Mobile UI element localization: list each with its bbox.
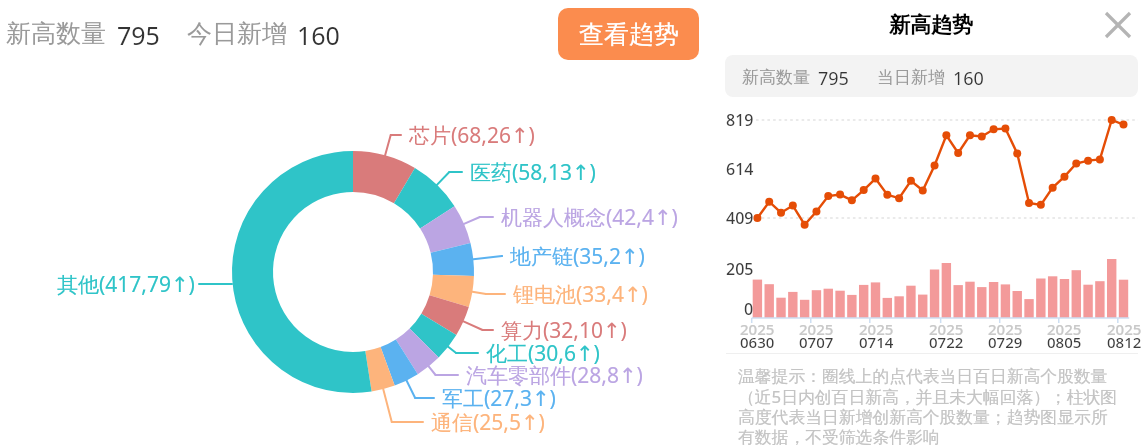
button[interactable]: Close <box>1099 6 1137 44</box>
staticText: 795 <box>117 18 160 52</box>
staticText: 新高数量 <box>742 67 810 88</box>
staticText: 0707 <box>799 332 834 352</box>
button[interactable]: 查看趋势 <box>558 8 699 60</box>
staticText: 2025 <box>859 319 894 339</box>
staticText: 温馨提示：圈线上的点代表当日百日新高个股数量（近5日内创百日新高，并且未大幅回落… <box>738 366 1122 445</box>
staticText: 通信(25,5↑) <box>431 408 545 437</box>
staticText: 409 <box>726 207 754 229</box>
staticText: 芯片(68,26↑) <box>409 121 535 150</box>
staticText: 其他(417,79↑) <box>57 270 195 299</box>
staticText: 0805 <box>1047 332 1082 352</box>
staticText: 0 <box>744 298 754 320</box>
staticText: 锂电池(33,4↑) <box>513 280 648 309</box>
staticText: 医药(58,13↑) <box>470 158 596 187</box>
button[interactable]: 其他(417,79↑) <box>57 270 195 299</box>
button[interactable]: 通信(25,5↑) <box>431 408 545 437</box>
staticText: 新高趋势 <box>889 12 973 38</box>
button[interactable]: 芯片(68,26↑) <box>409 121 535 150</box>
staticText: 军工(27,3↑) <box>442 384 556 413</box>
staticText: 0729 <box>988 332 1023 352</box>
staticText: 0722 <box>929 332 964 352</box>
button[interactable]: 算力(32,10↑) <box>501 316 627 345</box>
button[interactable]: 锂电池(33,4↑) <box>513 280 648 309</box>
button[interactable]: 地产链(35,2↑) <box>510 242 645 271</box>
staticText: 2025 <box>740 319 775 339</box>
staticText: 机器人概念(42,4↑) <box>501 203 678 232</box>
staticText: 205 <box>726 258 754 280</box>
staticText: 今日新增 <box>187 18 287 49</box>
staticText: 2025 <box>799 319 834 339</box>
staticText: 0630 <box>740 332 775 352</box>
staticText: 160 <box>953 66 984 91</box>
staticText: 160 <box>297 18 340 52</box>
staticText: 0812 <box>1107 332 1142 352</box>
staticText: 查看趋势 <box>579 19 679 50</box>
button[interactable]: 机器人概念(42,4↑) <box>501 203 678 232</box>
button[interactable]: 化工(30,6↑) <box>486 339 600 368</box>
staticText: 2025 <box>988 319 1023 339</box>
button[interactable]: 医药(58,13↑) <box>470 158 596 187</box>
staticText: 614 <box>726 158 754 180</box>
staticText: 新高数量 <box>6 18 106 49</box>
staticText: 795 <box>818 66 849 91</box>
button[interactable]: 汽车零部件(28,8↑) <box>466 361 643 390</box>
staticText: 汽车零部件(28,8↑) <box>466 361 643 390</box>
staticText: 2025 <box>1107 319 1142 339</box>
staticText: 2025 <box>1047 319 1082 339</box>
staticText: 地产链(35,2↑) <box>510 242 645 271</box>
staticText: 化工(30,6↑) <box>486 339 600 368</box>
staticText: 0714 <box>859 332 894 352</box>
staticText: 算力(32,10↑) <box>501 316 627 345</box>
staticText: 2025 <box>929 319 964 339</box>
button[interactable]: 军工(27,3↑) <box>442 384 556 413</box>
staticText: 819 <box>726 109 754 131</box>
staticText: 当日新增 <box>877 67 945 88</box>
